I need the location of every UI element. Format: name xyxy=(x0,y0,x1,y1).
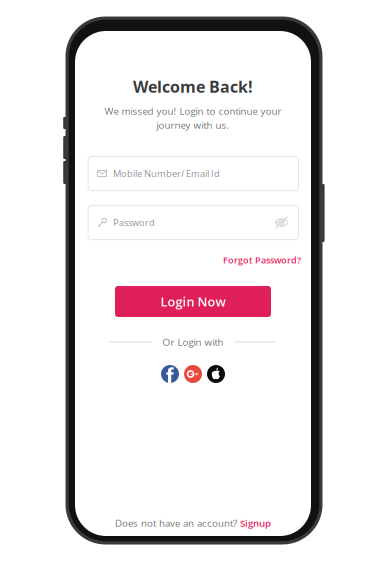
button[interactable]: Show password xyxy=(275,216,289,229)
staticText: journey with us. xyxy=(156,118,229,132)
staticText: Does not have an account? xyxy=(115,516,237,530)
button[interactable]: Continue with Apple xyxy=(207,365,225,383)
button[interactable]: Continue with Facebook xyxy=(161,365,179,383)
staticText: Or Login with xyxy=(162,335,223,349)
staticText: Signup xyxy=(240,516,271,530)
staticText: Login Now xyxy=(160,293,225,310)
staticText: Forgot Password? xyxy=(223,254,301,266)
button[interactable]: Forgot Password? xyxy=(223,254,301,266)
button[interactable]: Signup xyxy=(240,516,271,530)
button[interactable]: Login Now xyxy=(115,286,271,317)
staticText: We missed you! Login to continue your xyxy=(104,104,281,118)
button[interactable]: Continue with Google xyxy=(184,365,202,383)
staticText: Mobile Number/ Email Id xyxy=(113,167,220,180)
staticText: Welcome Back! xyxy=(133,76,253,97)
staticText: Password xyxy=(113,216,155,229)
